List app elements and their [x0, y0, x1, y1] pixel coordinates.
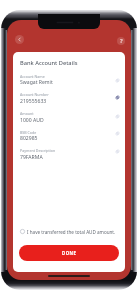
staticText: Amount: [20, 111, 34, 116]
button[interactable]: Copy Payment Description: [113, 147, 122, 156]
button[interactable]: DONE: [19, 245, 119, 261]
staticText: 79FARMA: [20, 154, 43, 161]
staticText: Account Number: [20, 92, 49, 97]
button[interactable]: I have transferred the total AUD amount.: [20, 227, 116, 236]
button[interactable]: Copy Account Number: [113, 93, 122, 102]
staticText: 1000 AUD: [20, 117, 44, 124]
button[interactable]: Help: [117, 37, 125, 45]
staticText: I have transferred the total AUD amount.: [27, 229, 116, 235]
staticText: Swagat Remit: [20, 79, 53, 86]
staticText: Payment Description: [20, 148, 56, 153]
button[interactable]: Copy BSB Code: [113, 129, 122, 138]
staticText: ?: [120, 37, 123, 45]
staticText: 219555633: [20, 98, 47, 105]
button[interactable]: Copy Amount: [113, 112, 122, 121]
staticText: 802985: [20, 135, 38, 142]
button[interactable]: Back: [15, 35, 24, 44]
staticText: Account Name: [20, 74, 45, 79]
staticText: BSB Code: [20, 130, 37, 135]
button[interactable]: Copy Account Name: [113, 76, 122, 85]
staticText: Bank Account Details: [20, 59, 78, 67]
staticText: DONE: [62, 250, 77, 256]
